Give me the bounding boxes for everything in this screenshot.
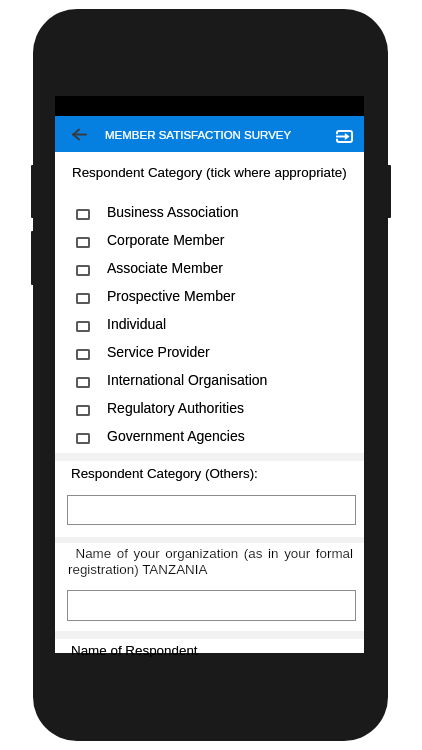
button[interactable]: Regulatory Authorities (55, 393, 364, 421)
staticText: Government Agencies (107, 428, 245, 444)
staticText: Individual (107, 316, 167, 332)
staticText: International Organisation (107, 372, 268, 388)
button[interactable]: Associate Member (55, 253, 364, 281)
staticText: Associate Member (107, 260, 223, 276)
staticText: Service Provider (107, 344, 210, 360)
staticText: Respondent Category (Others): (71, 466, 258, 481)
staticText: Corporate Member (107, 232, 225, 248)
staticText: Business Association (107, 204, 239, 220)
staticText: Individual (107, 316, 167, 332)
staticText: Service Provider (107, 344, 210, 360)
staticText: Name of your organization (as in your fo… (68, 546, 353, 577)
staticText: Associate Member (107, 260, 223, 276)
button[interactable] (67, 590, 356, 621)
button[interactable]: Individual (55, 309, 364, 337)
button[interactable]: Prospective Member (55, 281, 364, 309)
staticText: MEMBER SATISFACTION SURVEY (105, 129, 292, 142)
staticText: International Organisation (107, 372, 268, 388)
staticText: Name of Respondent (71, 643, 198, 657)
button[interactable]: International Organisation (55, 365, 364, 393)
staticText: Business Association (107, 204, 239, 220)
staticText: Name of Respondent (71, 643, 198, 657)
staticText: Respondent Category (Others): (71, 466, 258, 481)
button[interactable]: Service Provider (55, 337, 364, 365)
staticText: Prospective Member (107, 288, 236, 304)
staticText: Government Agencies (107, 428, 245, 444)
button[interactable]: Logout (326, 118, 362, 154)
button[interactable] (67, 495, 356, 525)
button[interactable]: Corporate Member (55, 225, 364, 253)
staticText: Regulatory Authorities (107, 400, 244, 416)
staticText: Regulatory Authorities (107, 400, 244, 416)
button[interactable]: Business Association (55, 197, 364, 225)
staticText: Respondent Category (tick where appropri… (72, 165, 347, 180)
staticText: Prospective Member (107, 288, 236, 304)
staticText: Corporate Member (107, 232, 225, 248)
button[interactable]: Back (61, 116, 97, 152)
staticText: Respondent Category (tick where appropri… (72, 165, 347, 180)
button[interactable]: Government Agencies (55, 421, 364, 449)
